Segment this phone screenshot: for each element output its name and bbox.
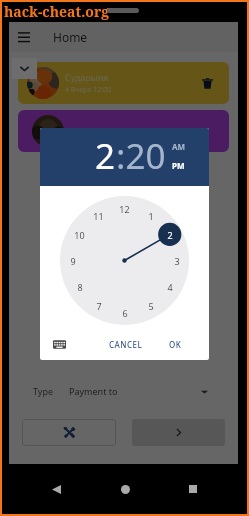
staticText: 4 Вчера 12:00 bbox=[65, 85, 112, 95]
button[interactable]: CANCEL bbox=[107, 334, 145, 355]
button[interactable]: Home bbox=[110, 474, 140, 504]
staticText: 4 bbox=[167, 281, 173, 293]
button[interactable]: Expand bbox=[12, 58, 37, 79]
button[interactable]: Menu bbox=[9, 22, 39, 52]
button[interactable]: PM bbox=[172, 160, 185, 171]
staticText: 7 bbox=[96, 300, 102, 312]
staticText: 11 bbox=[93, 210, 104, 222]
button[interactable]: Tools bbox=[22, 419, 116, 446]
staticText: 12 bbox=[119, 203, 130, 215]
staticText: 5 bbox=[148, 300, 154, 312]
staticText: 9 bbox=[70, 255, 76, 267]
staticText: 8 bbox=[77, 281, 83, 293]
button[interactable]: OK bbox=[167, 334, 184, 355]
button[interactable]: Delete bbox=[195, 71, 219, 95]
staticText: 1 bbox=[148, 210, 154, 222]
button[interactable]: Сударыня bbox=[18, 62, 229, 104]
button[interactable]: Switch to keyboard input bbox=[50, 335, 68, 353]
staticText: 3 bbox=[174, 255, 180, 267]
staticText: 2 bbox=[95, 132, 116, 180]
button[interactable]: Blake Williams bbox=[18, 110, 229, 152]
staticText: 10 bbox=[74, 229, 85, 241]
staticText: Home bbox=[53, 29, 88, 45]
staticText: hack-cheat.org bbox=[4, 2, 110, 21]
staticText: Blake Williams bbox=[69, 125, 130, 137]
staticText: AM bbox=[172, 141, 186, 152]
staticText: OK bbox=[169, 339, 182, 350]
staticText: 6 bbox=[122, 307, 128, 319]
button[interactable]: Back bbox=[41, 474, 71, 504]
staticText: PM bbox=[172, 160, 185, 171]
button[interactable]: Next bbox=[132, 419, 225, 446]
button[interactable]: Recents bbox=[178, 474, 208, 504]
button[interactable]: AM bbox=[172, 141, 186, 152]
staticText: Payment to bbox=[69, 385, 118, 397]
staticText: CANCEL bbox=[109, 339, 143, 350]
staticText: Сударыня bbox=[65, 71, 109, 83]
staticText: :20 bbox=[116, 132, 166, 180]
staticText: 2 bbox=[167, 229, 173, 241]
staticText: Type bbox=[33, 385, 54, 397]
